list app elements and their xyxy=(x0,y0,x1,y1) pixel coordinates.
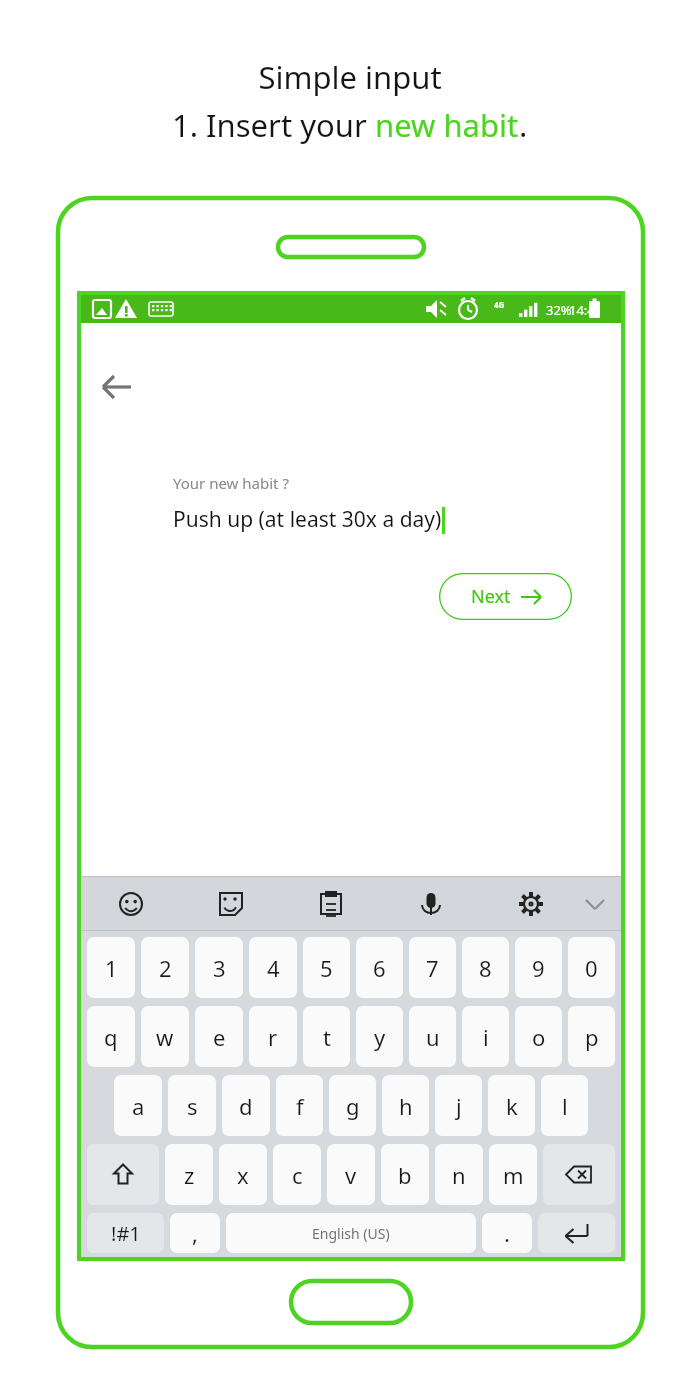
button[interactable]: g xyxy=(329,1075,376,1136)
staticText: 1. Insert your xyxy=(172,104,375,146)
button[interactable]: w xyxy=(141,1006,189,1067)
staticText: m xyxy=(503,1160,524,1190)
staticText: y xyxy=(374,1022,386,1052)
button[interactable]: 9 xyxy=(515,937,562,998)
staticText: 8 xyxy=(479,953,492,983)
staticText: f xyxy=(296,1091,304,1121)
staticText: h xyxy=(399,1091,413,1121)
button[interactable]: !#1 xyxy=(87,1213,164,1253)
staticText: x xyxy=(237,1160,249,1190)
staticText: n xyxy=(452,1160,466,1190)
button[interactable]: e xyxy=(195,1006,243,1067)
staticText: k xyxy=(506,1091,518,1121)
button[interactable]: English (US) xyxy=(226,1213,476,1253)
button[interactable]: h xyxy=(382,1075,429,1136)
staticText: 3 xyxy=(213,953,226,983)
staticText: 6 xyxy=(373,953,386,983)
button[interactable]: l xyxy=(541,1075,588,1136)
button[interactable]: Voice input xyxy=(415,888,447,920)
button[interactable]: 5 xyxy=(303,937,350,998)
button[interactable]: m xyxy=(489,1144,537,1205)
staticText: 0 xyxy=(585,953,598,983)
button[interactable]: q xyxy=(87,1006,135,1067)
staticText: Simple input xyxy=(258,56,442,98)
button[interactable]: s xyxy=(168,1075,216,1136)
button[interactable]: 3 xyxy=(195,937,243,998)
staticText: z xyxy=(184,1160,195,1190)
button[interactable]: 7 xyxy=(409,937,456,998)
button[interactable]: n xyxy=(435,1144,483,1205)
staticText: j xyxy=(456,1091,462,1121)
staticText: Next xyxy=(471,584,511,609)
button[interactable]: 2 xyxy=(141,937,189,998)
staticText: Your new habit ? xyxy=(173,473,289,493)
button[interactable]: Back xyxy=(95,365,139,409)
staticText: . xyxy=(519,104,528,146)
button[interactable]: t xyxy=(303,1006,350,1067)
button[interactable]: y xyxy=(356,1006,403,1067)
button[interactable]: k xyxy=(488,1075,535,1136)
staticText: s xyxy=(187,1091,198,1121)
staticText: 2 xyxy=(159,953,172,983)
button[interactable]: j xyxy=(435,1075,482,1136)
staticText: i xyxy=(483,1022,489,1052)
staticText: 7 xyxy=(426,953,439,983)
staticText: English (US) xyxy=(312,1224,390,1243)
button[interactable]: Backspace xyxy=(543,1144,615,1205)
button[interactable]: u xyxy=(409,1006,456,1067)
staticText: c xyxy=(292,1160,303,1190)
staticText: 32% xyxy=(546,301,572,319)
button[interactable]: Clipboard xyxy=(315,888,347,920)
staticText: 4G xyxy=(494,299,505,310)
staticText: Push up (at least 30x a day) xyxy=(173,505,442,534)
staticText: p xyxy=(585,1022,599,1052)
staticText: a xyxy=(132,1091,145,1121)
staticText: r xyxy=(268,1022,278,1052)
button[interactable]: a xyxy=(114,1075,162,1136)
staticText: 5 xyxy=(320,953,333,983)
staticText: w xyxy=(156,1022,174,1052)
button[interactable]: b xyxy=(381,1144,429,1205)
button[interactable]: d xyxy=(222,1075,270,1136)
button[interactable]: x xyxy=(219,1144,267,1205)
staticText: 14:41 xyxy=(569,301,603,319)
button[interactable]: Emoji xyxy=(115,888,147,920)
button[interactable]: o xyxy=(515,1006,562,1067)
button[interactable]: p xyxy=(568,1006,615,1067)
staticText: l xyxy=(562,1091,568,1121)
staticText: g xyxy=(346,1091,360,1121)
staticText: . xyxy=(504,1218,510,1248)
button[interactable]: z xyxy=(165,1144,213,1205)
button[interactable]: Keyboard settings xyxy=(515,888,547,920)
staticText: 9 xyxy=(532,953,545,983)
button[interactable]: v xyxy=(327,1144,375,1205)
staticText: 4 xyxy=(267,953,280,983)
button[interactable]: Hide keyboard xyxy=(581,890,609,918)
button[interactable]: Enter xyxy=(538,1213,615,1253)
button[interactable]: Next xyxy=(439,573,572,620)
button[interactable]: f xyxy=(276,1075,323,1136)
staticText: u xyxy=(426,1022,440,1052)
staticText: v xyxy=(345,1160,357,1190)
button[interactable]: 6 xyxy=(356,937,403,998)
button[interactable]: . xyxy=(482,1213,532,1253)
staticText: new habit xyxy=(375,104,519,146)
button[interactable]: 8 xyxy=(462,937,509,998)
staticText: !#1 xyxy=(111,1220,141,1247)
button[interactable]: r xyxy=(249,1006,297,1067)
button[interactable]: Shift xyxy=(87,1144,159,1205)
staticText: , xyxy=(192,1218,198,1248)
button[interactable]: 1 xyxy=(87,937,135,998)
staticText: t xyxy=(323,1022,331,1052)
button[interactable]: , xyxy=(170,1213,220,1253)
staticText: e xyxy=(213,1022,226,1052)
staticText: d xyxy=(239,1091,253,1121)
button[interactable]: Stickers xyxy=(215,888,247,920)
staticText: 1 xyxy=(105,953,118,983)
staticText: q xyxy=(104,1022,118,1052)
button[interactable]: 4 xyxy=(249,937,297,998)
button[interactable]: i xyxy=(462,1006,509,1067)
staticText: o xyxy=(532,1022,546,1052)
button[interactable]: 0 xyxy=(568,937,615,998)
button[interactable]: c xyxy=(273,1144,321,1205)
